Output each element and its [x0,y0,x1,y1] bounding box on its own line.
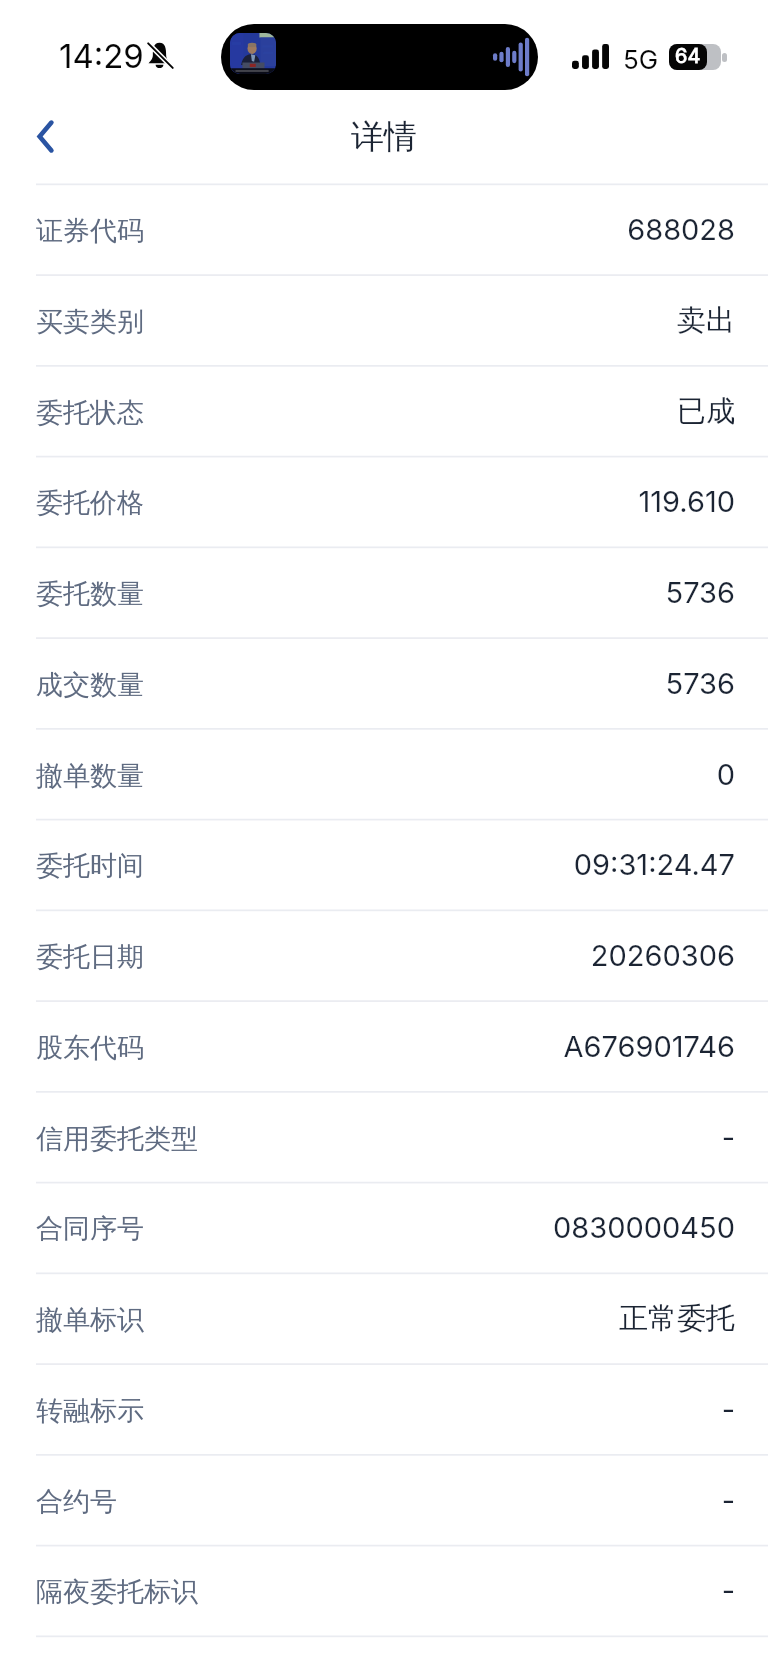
button[interactable]: 委托数量 [0,548,768,637]
staticText: 撤单标识 [36,1303,144,1337]
staticText: 委托日期 [36,940,144,974]
staticText: 5736 [665,666,735,701]
button[interactable]: 撤单标识 [0,1274,768,1363]
button[interactable]: 隔夜委托标识 [0,1546,768,1635]
staticText: 688028 [627,212,735,247]
staticText: 09:31:24.47 [573,847,735,882]
staticText: - [721,1392,735,1427]
staticText: 14:29 [59,36,144,76]
staticText: 撤单数量 [36,759,144,793]
staticText: 买卖类别 [36,305,144,339]
staticText: 委托数量 [36,577,144,611]
button[interactable]: 买卖类别 [0,276,768,365]
staticText: 合同序号 [36,1212,144,1246]
staticText: 委托价格 [36,486,144,520]
staticText: 119.610 [638,484,735,519]
button[interactable]: 委托状态 [0,367,768,456]
button[interactable]: 证券代码 [0,185,768,274]
staticText: 20260306 [590,938,735,973]
staticText: 已成 [677,393,735,430]
button[interactable]: 成交数量 [0,639,768,728]
button[interactable]: 股东代码 [0,1002,768,1091]
staticText: 委托时间 [36,849,144,883]
button[interactable]: Back [16,101,74,171]
staticText: 证券代码 [36,214,144,248]
staticText: 隔夜委托标识 [36,1575,198,1609]
staticText: 5G [623,44,659,75]
staticText: 正常委托 [619,1300,735,1337]
staticText: 卖出 [677,302,735,339]
button[interactable]: 信用委托类型 [0,1093,768,1182]
button[interactable]: 撤单数量 [0,730,768,819]
button[interactable]: 合同序号 [0,1183,768,1272]
staticText: 委托状态 [36,396,144,430]
staticText: 成交数量 [36,668,144,702]
staticText: 详情 [351,116,417,158]
button[interactable]: 转融标示 [0,1365,768,1454]
staticText: 信用委托类型 [36,1122,198,1156]
button[interactable]: 委托时间 [0,820,768,909]
staticText: - [721,1573,735,1608]
staticText: 转融标示 [36,1394,144,1428]
staticText: - [721,1483,735,1518]
staticText: 0830000450 [553,1210,735,1245]
staticText: 股东代码 [36,1031,144,1065]
staticText: 0 [716,757,735,792]
staticText: - [721,1120,735,1155]
staticText: A676901746 [563,1029,735,1064]
button[interactable]: 委托价格 [0,457,768,546]
staticText: 64 [675,44,701,68]
staticText: 合约号 [36,1485,117,1519]
staticText: 5736 [665,575,735,610]
button[interactable]: 合约号 [0,1456,768,1545]
button[interactable]: 委托日期 [0,911,768,1000]
